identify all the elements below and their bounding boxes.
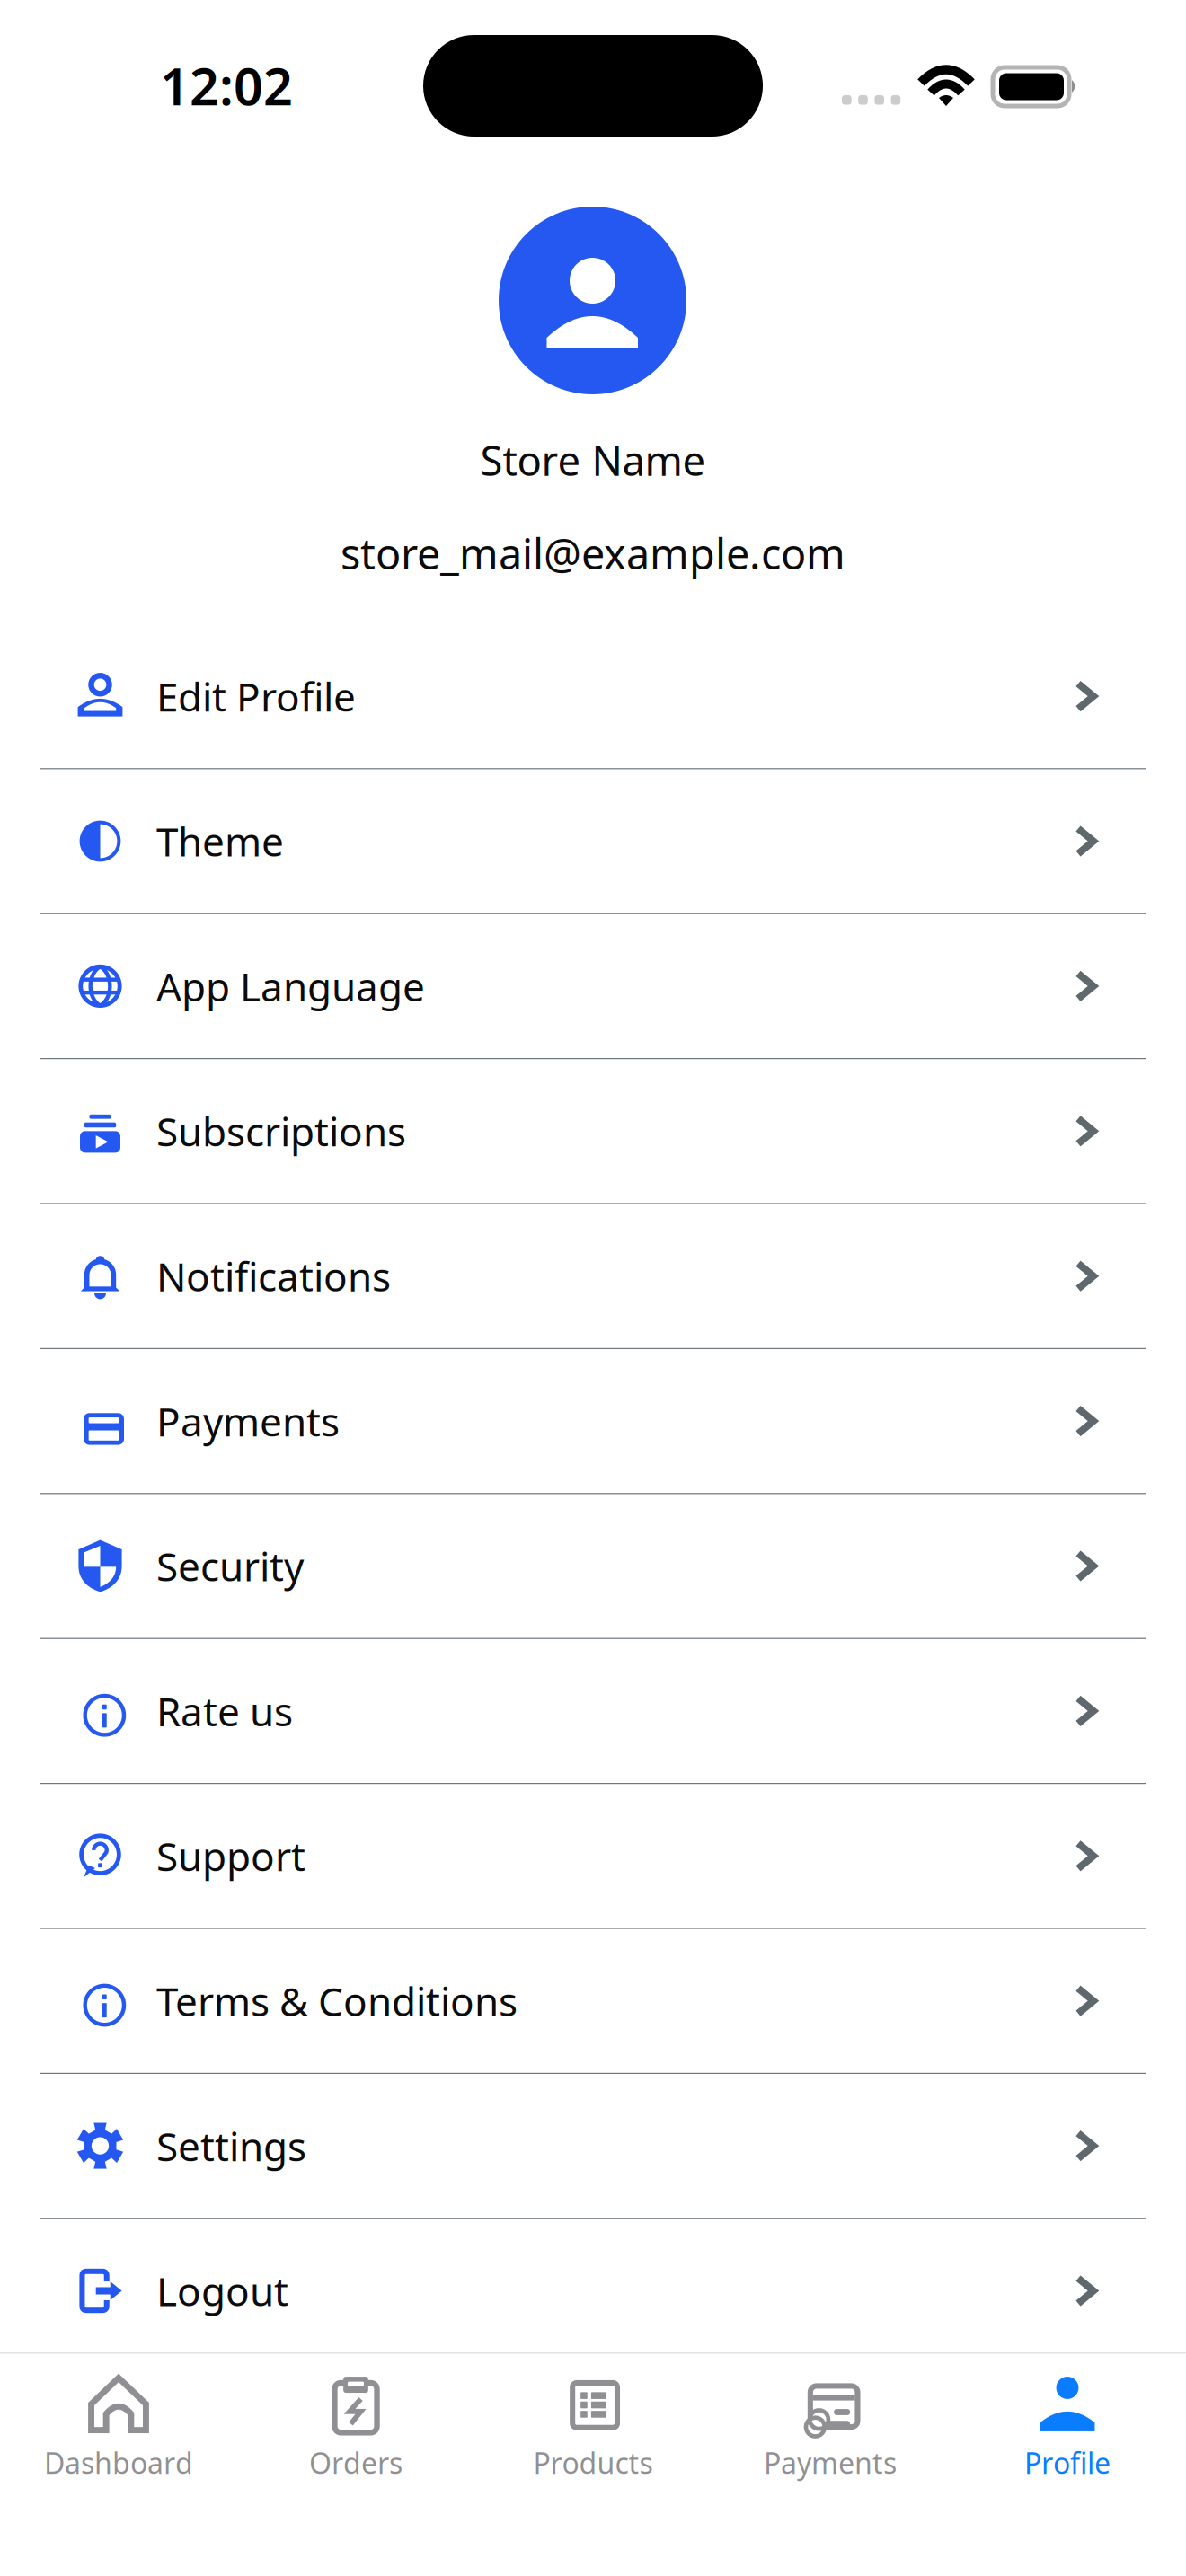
button[interactable]: Support: [0, 1784, 1186, 1928]
button[interactable]: Theme: [0, 769, 1186, 913]
staticText: Settings: [156, 2120, 306, 2172]
staticText: Store Name: [480, 433, 706, 487]
button[interactable]: Dashboard: [0, 2354, 237, 2494]
staticText: 12:02: [160, 51, 293, 120]
staticText: store_mail@example.com: [341, 525, 845, 581]
staticText: Theme: [156, 815, 284, 867]
button[interactable]: Settings: [0, 2074, 1186, 2218]
staticText: App Language: [156, 960, 425, 1012]
button[interactable]: Payments: [712, 2354, 949, 2494]
staticText: Orders: [309, 2444, 403, 2482]
button[interactable]: Products: [474, 2354, 712, 2494]
staticText: Dashboard: [44, 2444, 193, 2482]
button[interactable]: Terms & Conditions: [0, 1929, 1186, 2073]
button[interactable]: Edit Profile: [0, 624, 1186, 768]
button[interactable]: App Language: [0, 914, 1186, 1058]
button[interactable]: Subscriptions: [0, 1059, 1186, 1203]
staticText: Products: [533, 2444, 653, 2482]
staticText: Support: [156, 1830, 305, 1882]
staticText: Notifications: [156, 1250, 391, 1302]
staticText: Payments: [156, 1395, 340, 1447]
staticText: Profile: [1024, 2444, 1111, 2482]
staticText: Subscriptions: [156, 1105, 406, 1157]
button[interactable]: Notifications: [0, 1204, 1186, 1348]
button[interactable]: Orders: [237, 2354, 474, 2494]
button[interactable]: Rate us: [0, 1639, 1186, 1783]
button[interactable]: Security: [0, 1494, 1186, 1638]
staticText: Logout: [156, 2265, 288, 2317]
button[interactable]: Payments: [0, 1349, 1186, 1493]
button[interactable]: Profile: [949, 2354, 1186, 2494]
staticText: Edit Profile: [156, 670, 356, 722]
staticText: Rate us: [156, 1685, 293, 1737]
staticText: Terms & Conditions: [156, 1975, 518, 2027]
button[interactable]: Logout: [0, 2219, 1186, 2363]
staticText: Payments: [764, 2444, 897, 2482]
staticText: Security: [156, 1540, 304, 1592]
